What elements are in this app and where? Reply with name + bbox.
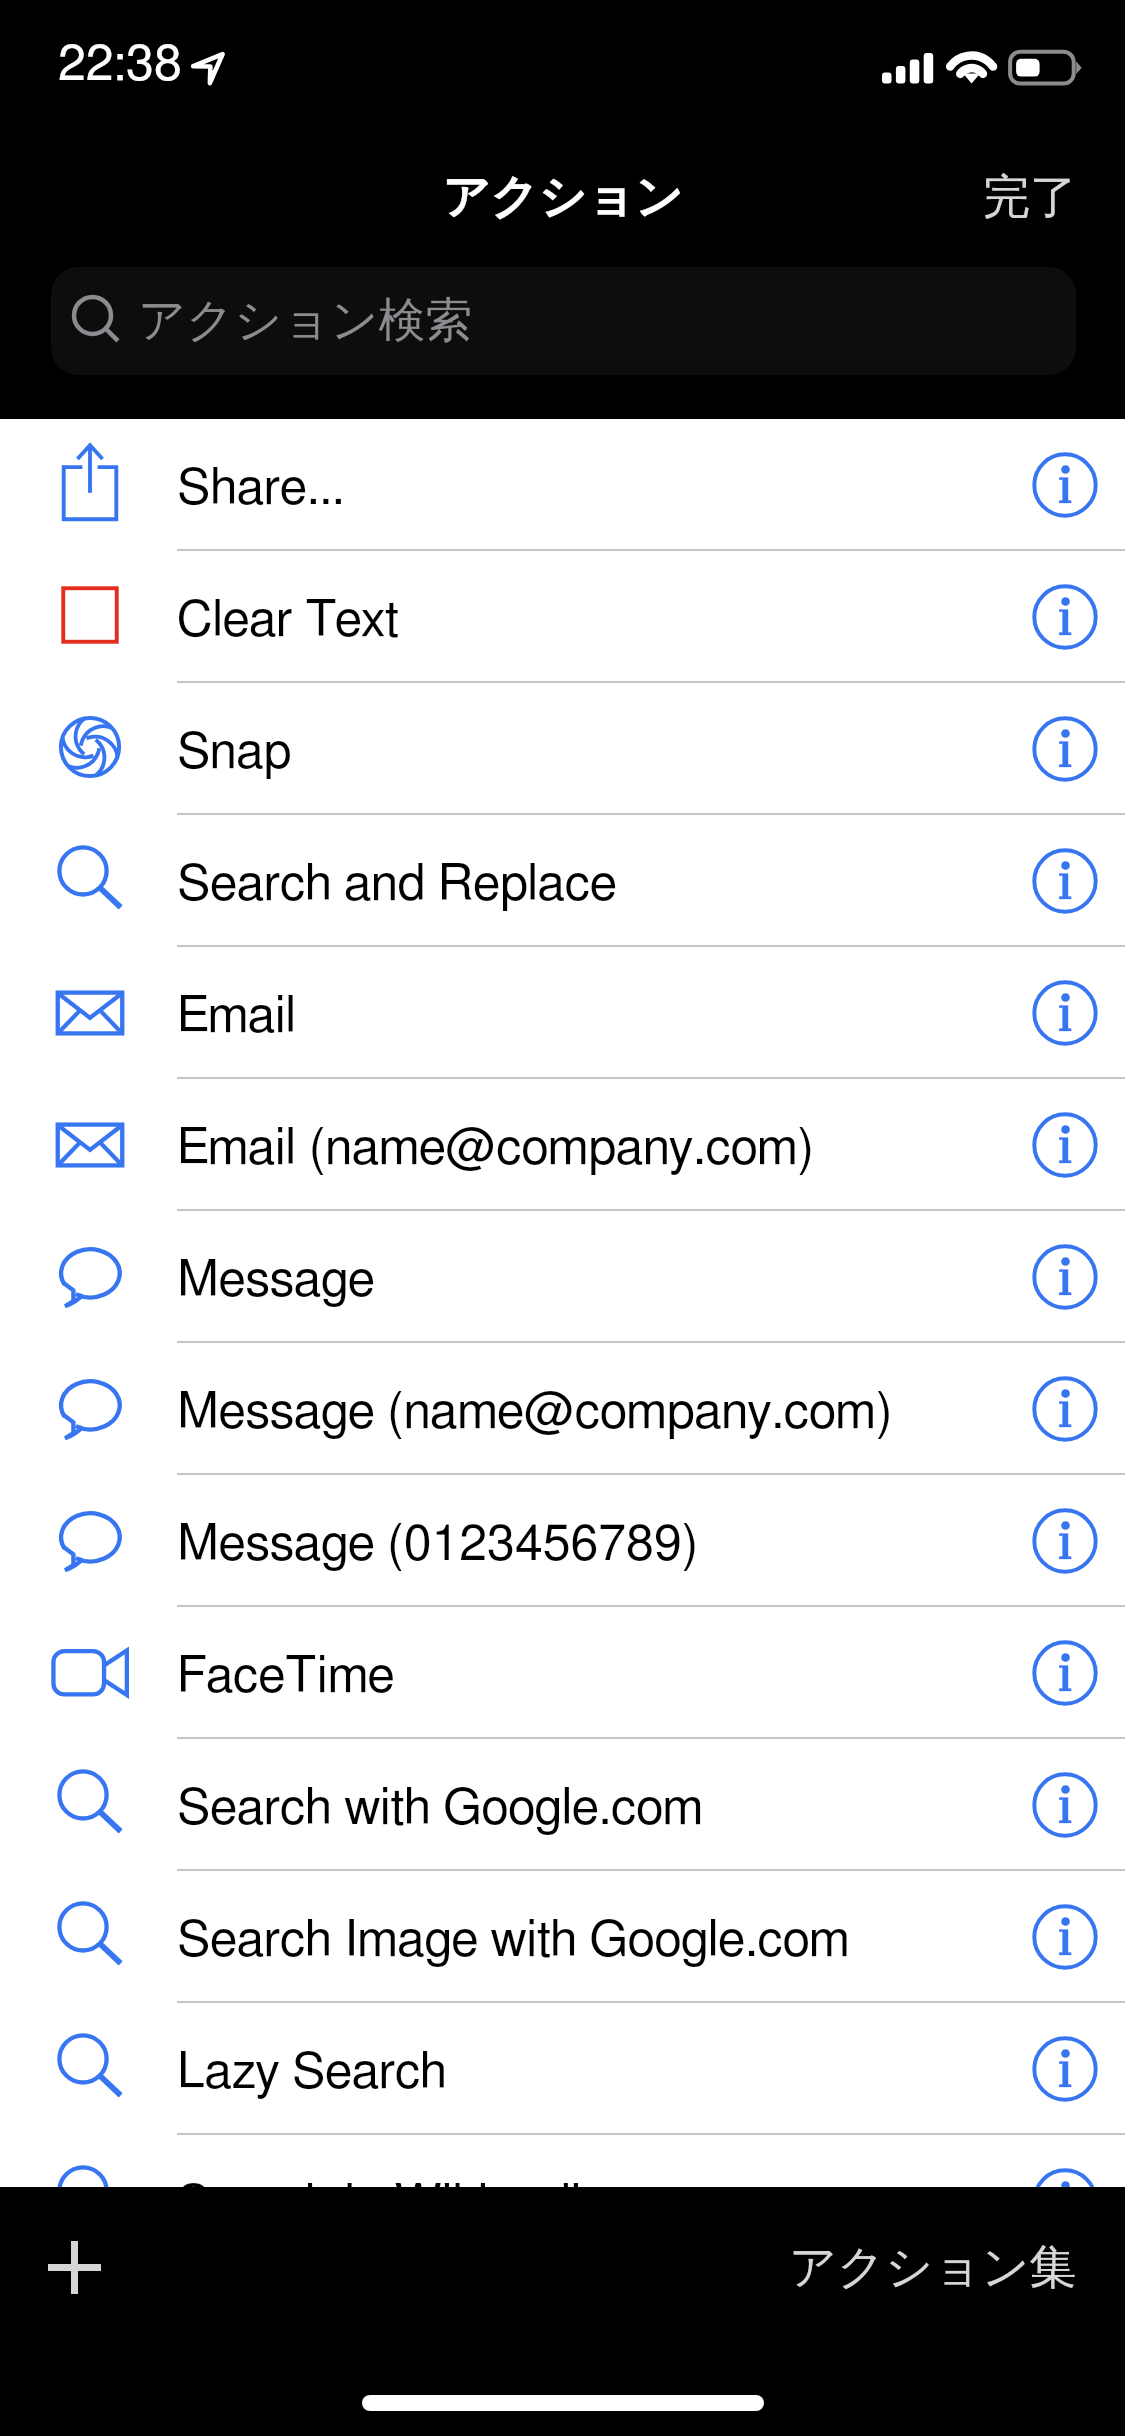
staticText: Message (0123456789) <box>177 1520 699 1570</box>
button[interactable]: Lazy Search <box>0 2003 1125 2135</box>
button[interactable]: More info <box>1015 699 1115 799</box>
button[interactable]: FaceTime <box>0 1607 1125 1739</box>
staticText: Message (name@company.com) <box>177 1388 893 1438</box>
button[interactable]: More info <box>1015 1623 1115 1723</box>
staticText: Clear Text <box>177 596 399 646</box>
staticText: Email <box>177 992 297 1042</box>
button[interactable]: More info <box>1015 435 1115 535</box>
staticText: FaceTime <box>177 1652 395 1702</box>
staticText: Lazy Search <box>177 2048 447 2098</box>
button[interactable]: More info <box>1015 831 1115 931</box>
staticText: Email (name@company.com) <box>177 1124 815 1174</box>
button[interactable]: More info <box>1015 2151 1115 2251</box>
staticText: Search in Wikipedia.org <box>177 2180 691 2230</box>
button[interactable]: Clear Text <box>0 551 1125 683</box>
staticText: Search with Google.com <box>177 1784 704 1834</box>
button[interactable]: Add action <box>28 2221 120 2313</box>
button[interactable]: アクション集 <box>775 2228 1091 2307</box>
staticText: Share... <box>177 464 345 514</box>
button[interactable]: More info <box>1015 1359 1115 1459</box>
staticText: アクション検索 <box>138 291 473 350</box>
button[interactable]: More info <box>1015 567 1115 667</box>
button[interactable]: アクション検索 <box>51 267 1076 375</box>
button[interactable]: Share... <box>0 419 1125 551</box>
button[interactable]: Search with Google.com <box>0 1739 1125 1871</box>
button[interactable]: More info <box>1015 1755 1115 1855</box>
button[interactable]: Message (0123456789) <box>0 1475 1125 1607</box>
button[interactable]: More info <box>1015 1491 1115 1591</box>
button[interactable]: Email <box>0 947 1125 1079</box>
button[interactable]: Search in Wikipedia.org <box>0 2135 1125 2267</box>
staticText: Search Image with Google.com <box>177 1916 850 1966</box>
button[interactable]: 完了 <box>969 158 1091 237</box>
button[interactable]: More info <box>1015 1887 1115 1987</box>
button[interactable]: More info <box>1015 1095 1115 1195</box>
button[interactable]: Message (name@company.com) <box>0 1343 1125 1475</box>
button[interactable]: Snap <box>0 683 1125 815</box>
button[interactable]: More info <box>1015 1227 1115 1327</box>
button[interactable]: Search and Replace <box>0 815 1125 947</box>
staticText: Snap <box>177 728 292 778</box>
button[interactable]: Search Image with Google.com <box>0 1871 1125 2003</box>
staticText: Search and Replace <box>177 860 617 910</box>
button[interactable]: Email (name@company.com) <box>0 1079 1125 1211</box>
button[interactable]: More info <box>1015 963 1115 1063</box>
staticText: アクション集 <box>789 2238 1077 2297</box>
button[interactable]: Message <box>0 1211 1125 1343</box>
staticText: アクション <box>0 168 1125 227</box>
staticText: 22:38 <box>58 40 182 90</box>
staticText: Message <box>177 1256 375 1306</box>
button[interactable]: More info <box>1015 2019 1115 2119</box>
staticText: 完了 <box>983 168 1077 227</box>
